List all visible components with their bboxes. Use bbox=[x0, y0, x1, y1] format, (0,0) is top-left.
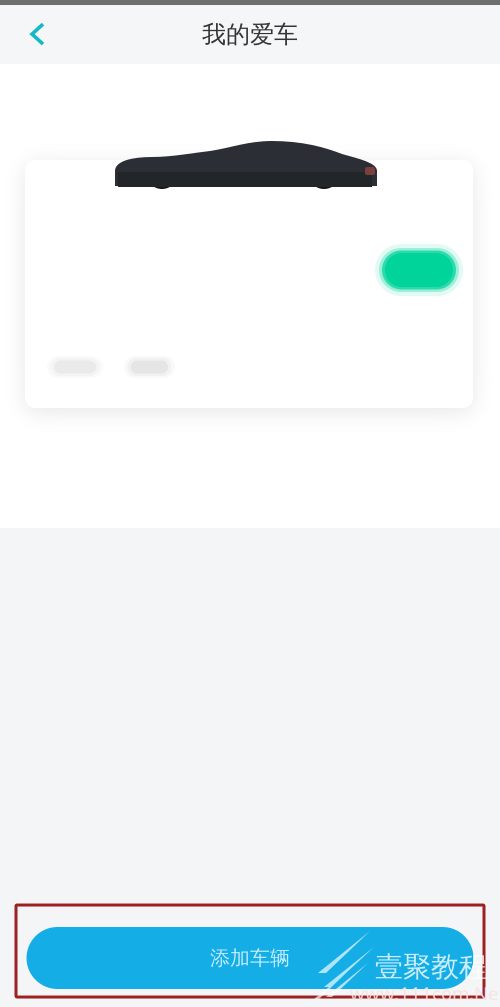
staticText: 我的爱车 bbox=[202, 20, 298, 49]
button[interactable]: 添加车辆 bbox=[26, 927, 473, 989]
button[interactable]: Back bbox=[10, 5, 66, 64]
staticText: 壹聚教程 bbox=[375, 950, 487, 984]
staticText: www.111com.Net bbox=[350, 981, 500, 1005]
staticText: 添加车辆 bbox=[210, 946, 290, 970]
